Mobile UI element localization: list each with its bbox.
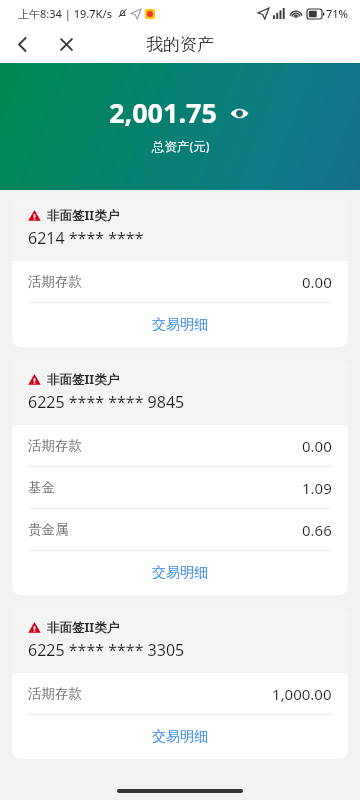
staticText: 71% [326,6,348,21]
staticText: 1,000.00 [272,684,332,704]
button[interactable]: Back [0,26,44,63]
staticText: 非面签II类户 [47,207,120,224]
staticText: 总资产(元) [152,138,210,155]
staticText: 活期存款 [28,437,82,454]
staticText: 活期存款 [28,685,82,702]
button[interactable]: 交易明细 [12,715,348,759]
staticText: 1.09 [302,478,332,498]
staticText: 我的资产 [146,34,214,55]
staticText: 交易明细 [152,728,208,746]
staticText: 上午8:34 | 19.7K/s [18,6,113,21]
button[interactable]: 非面签II类户 [12,360,348,595]
button[interactable]: 交易明细 [12,551,348,595]
staticText: 6225 **** **** 3305 [28,639,185,661]
button[interactable]: 交易明细 [12,303,348,347]
staticText: 0.00 [302,272,332,292]
staticText: 交易明细 [152,316,208,334]
staticText: 2,001.75 [109,94,217,131]
staticText: 活期存款 [28,273,82,290]
staticText: 0.66 [302,520,332,540]
staticText: 0.00 [302,436,332,456]
staticText: 6214 **** **** [28,227,152,249]
button[interactable]: Close [44,26,88,63]
button[interactable]: 非面签II类户 [12,608,348,759]
staticText: 贵金属 [28,521,69,538]
button[interactable]: Toggle balance visibility [226,100,252,126]
button[interactable]: 非面签II类户 [12,196,348,347]
staticText: 非面签II类户 [47,371,120,388]
staticText: 基金 [28,479,55,496]
staticText: 交易明细 [152,564,208,582]
staticText: 非面签II类户 [47,619,120,636]
staticText: 6225 **** **** 9845 [28,391,185,413]
